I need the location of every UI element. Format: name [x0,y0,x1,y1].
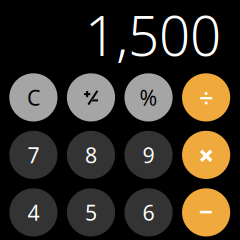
staticText: 5 [85,198,97,226]
staticText: % [139,83,157,111]
staticText: 1,500 [85,0,221,71]
button[interactable]: Divide [182,73,230,121]
button[interactable]: % [124,73,173,121]
staticText: 8 [85,141,97,169]
button[interactable]: 6 [124,188,173,236]
button[interactable]: 4 [9,188,57,236]
button[interactable]: Minus [182,188,230,236]
staticText: 9 [142,141,154,169]
button[interactable]: 7 [9,131,57,179]
staticText: C [27,83,40,111]
button[interactable]: C [9,73,57,121]
button[interactable]: 5 [67,188,115,236]
staticText: 4 [27,198,39,226]
button[interactable]: Plus minus [67,73,115,121]
staticText: 7 [27,141,39,169]
button[interactable]: Multiply [182,131,230,179]
staticText: 6 [142,198,154,226]
button[interactable]: 9 [124,131,173,179]
button[interactable]: 8 [67,131,115,179]
